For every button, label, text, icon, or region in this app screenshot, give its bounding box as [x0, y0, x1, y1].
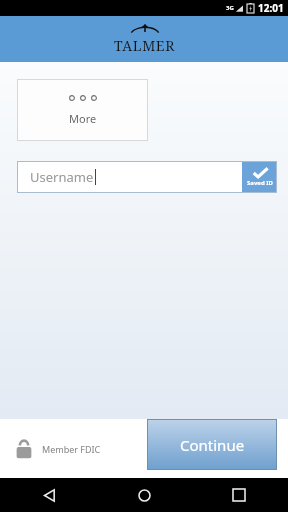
button[interactable]: Continue [147, 419, 277, 470]
button[interactable]: Recent apps [226, 482, 252, 508]
staticText: 3G [226, 4, 234, 12]
staticText: Username [30, 168, 94, 186]
button[interactable]: Back [36, 482, 62, 508]
staticText: More [69, 111, 97, 126]
staticText: Continue [180, 435, 245, 455]
button[interactable]: More [17, 79, 148, 141]
staticText: TALMER [114, 36, 175, 55]
staticText: Saved ID [247, 179, 273, 187]
button[interactable]: Username [17, 161, 242, 193]
button[interactable]: Saved ID [242, 161, 277, 193]
staticText: 12:01 [258, 1, 284, 15]
staticText: Member FDIC [42, 443, 101, 455]
button[interactable]: Home [131, 482, 157, 508]
